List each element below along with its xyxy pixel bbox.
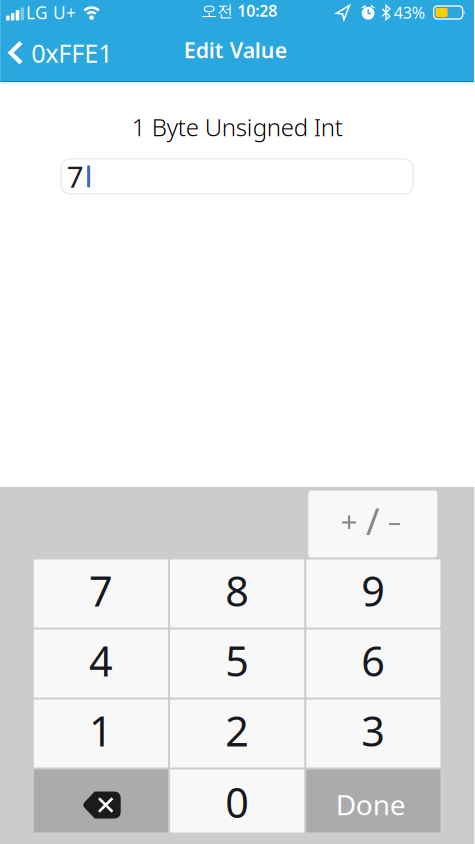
staticText: Done xyxy=(336,786,406,823)
button[interactable]: Back xyxy=(0,36,112,70)
staticText: 1 xyxy=(89,703,113,758)
staticText: 4 xyxy=(89,633,113,688)
button[interactable]: Done xyxy=(306,769,440,832)
button[interactable]: 3 xyxy=(306,699,440,767)
button[interactable]: 6 xyxy=(306,629,440,697)
button[interactable]: 0 xyxy=(170,769,304,832)
staticText: 3 xyxy=(361,703,385,758)
staticText: + xyxy=(341,501,358,540)
button[interactable]: Value field xyxy=(0,159,474,194)
staticText: 43% xyxy=(394,2,425,23)
button[interactable]: 1 xyxy=(34,699,168,767)
button[interactable]: Delete xyxy=(34,769,168,832)
staticText: LG U+ xyxy=(26,1,76,24)
staticText: / xyxy=(366,496,380,546)
staticText: – xyxy=(388,503,401,539)
button[interactable]: 2 xyxy=(170,699,304,767)
staticText: 2 xyxy=(225,703,249,758)
staticText: 오전 10:28 xyxy=(201,0,277,21)
staticText: 5 xyxy=(225,633,249,688)
staticText: 0xFFE1 xyxy=(31,36,112,70)
button[interactable]: 5 xyxy=(170,629,304,697)
staticText: 8 xyxy=(225,563,249,618)
button[interactable]: 8 xyxy=(170,559,304,627)
button[interactable]: 7 xyxy=(34,559,168,627)
button[interactable]: 9 xyxy=(306,559,440,627)
staticText: Edit Value xyxy=(184,36,287,64)
staticText: 9 xyxy=(361,563,385,618)
staticText: 7 xyxy=(67,157,84,196)
button[interactable]: Plus minus sign xyxy=(308,490,437,557)
staticText: 1 Byte Unsigned Int xyxy=(132,111,343,143)
staticText: 0 xyxy=(225,775,249,829)
staticText: 6 xyxy=(361,633,385,688)
staticText: 7 xyxy=(89,563,113,618)
button[interactable]: 4 xyxy=(34,629,168,697)
